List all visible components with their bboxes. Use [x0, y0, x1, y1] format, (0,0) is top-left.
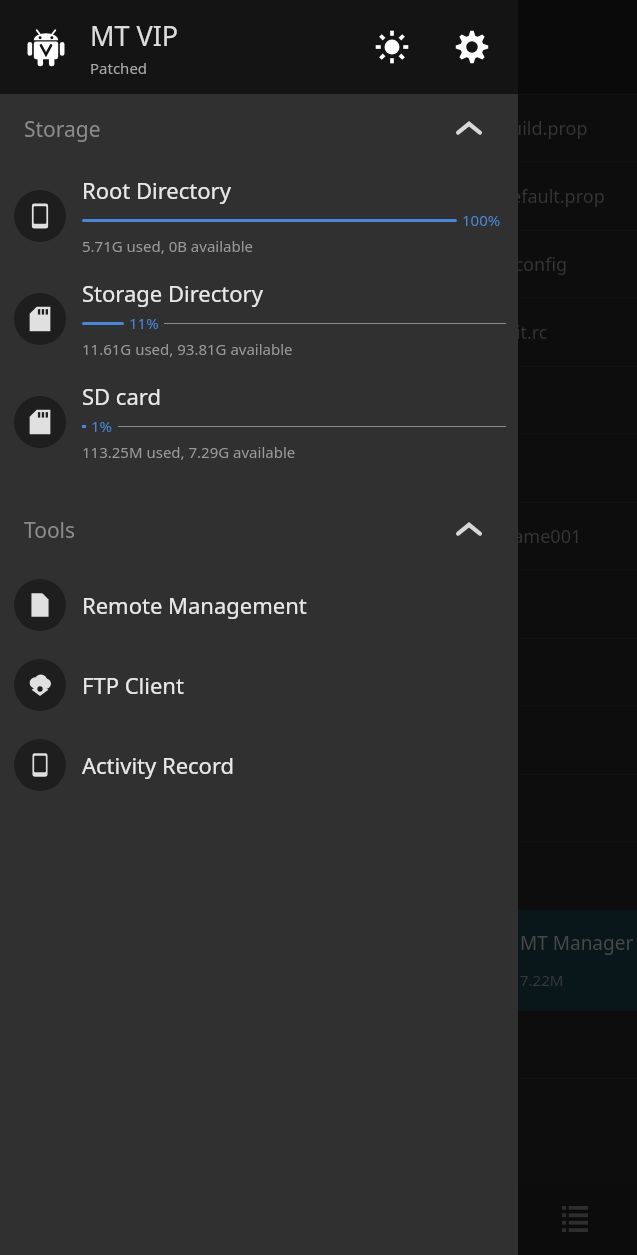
staticText: Tools: [24, 516, 452, 545]
button[interactable]: Settings: [446, 21, 498, 73]
button[interactable]: [0, 1010, 637, 1078]
button[interactable]: Storage: [0, 94, 518, 164]
button[interactable]: ...config: [0, 230, 637, 298]
staticText: Patched: [90, 58, 148, 78]
button[interactable]: [0, 570, 637, 638]
staticText: ...config: [500, 252, 568, 277]
staticText: Storage: [24, 115, 452, 144]
button[interactable]: [0, 1078, 637, 1146]
button[interactable]: Tools: [0, 495, 518, 565]
staticText: 11.61G used, 93.81G available: [82, 339, 293, 359]
button[interactable]: default.prop: [0, 162, 637, 230]
staticText: Activity Record: [82, 750, 235, 780]
staticText: MT Manager Pro -: [520, 930, 637, 956]
button[interactable]: MT Manager Pro -: [0, 910, 637, 1010]
staticText: frame001: [500, 524, 582, 549]
staticText: FTP Client: [82, 670, 184, 700]
staticText: init.rc: [500, 320, 548, 345]
button[interactable]: [518, 0, 637, 1255]
button[interactable]: Activity Record: [0, 725, 518, 805]
button[interactable]: SD card: [0, 370, 518, 473]
button[interactable]: frame001: [0, 502, 637, 570]
button[interactable]: [0, 774, 637, 842]
staticText: Root Directory: [82, 175, 231, 205]
button[interactable]: Remote Management: [0, 565, 518, 645]
staticText: SD card: [82, 381, 161, 411]
button[interactable]: [0, 842, 637, 910]
staticText: Remote Management: [82, 590, 307, 620]
staticText: 100%: [462, 210, 501, 230]
staticText: 113.25M used, 7.29G available: [82, 442, 296, 462]
staticText: 11%: [129, 313, 159, 333]
button[interactable]: Root Directory: [0, 164, 518, 267]
staticText: default.prop: [500, 184, 605, 209]
button[interactable]: FTP Client: [0, 645, 518, 725]
button[interactable]: Storage Directory: [0, 267, 518, 370]
staticText: 7.22M: [520, 970, 564, 990]
staticText: Storage Directory: [82, 278, 263, 308]
staticText: build.prop: [500, 116, 588, 141]
button[interactable]: [0, 434, 637, 502]
button[interactable]: App logo, open navigation: [18, 19, 74, 75]
staticText: MT VIP: [90, 17, 179, 54]
button[interactable]: List view: [553, 1197, 597, 1241]
button[interactable]: [0, 638, 637, 706]
button[interactable]: build.prop: [0, 94, 637, 162]
button[interactable]: [0, 366, 637, 434]
button[interactable]: init.rc: [0, 298, 637, 366]
button[interactable]: [0, 706, 637, 774]
staticText: 1%: [91, 416, 113, 436]
staticText: 5.71G used, 0B available: [82, 236, 254, 256]
button[interactable]: Brightness: [366, 21, 418, 73]
